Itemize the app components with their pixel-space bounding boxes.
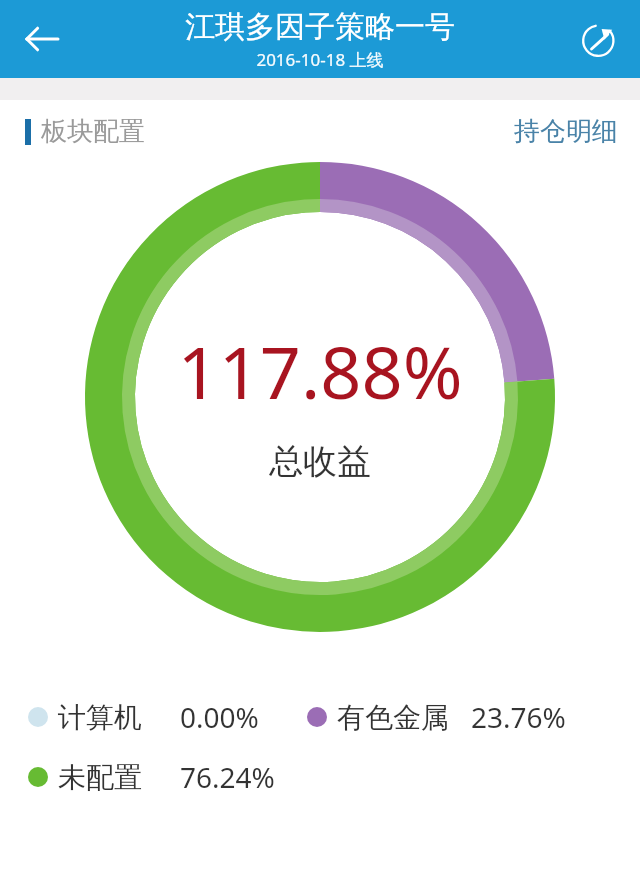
staticText: 未配置	[58, 760, 142, 795]
staticText: 总收益	[269, 440, 371, 483]
staticText: 江琪多因子策略一号	[185, 8, 455, 46]
staticText: 计算机	[58, 700, 142, 735]
button[interactable]: 未配置	[28, 758, 275, 796]
staticText: 2016-10-18 上线	[256, 48, 384, 71]
staticText: 23.76%	[471, 698, 566, 736]
button[interactable]: Share	[572, 11, 628, 67]
button[interactable]: 计算机	[28, 698, 259, 736]
staticText: 板块配置	[41, 115, 145, 148]
staticText: 有色金属	[337, 700, 449, 735]
staticText: 0.00%	[180, 698, 259, 736]
staticText: 持仓明细	[514, 115, 618, 148]
staticText: 76.24%	[180, 758, 275, 796]
button[interactable]: Back	[14, 11, 70, 67]
button[interactable]: 有色金属	[307, 698, 566, 736]
button[interactable]: 持仓明细	[514, 115, 618, 148]
staticText: 117.88%	[177, 322, 463, 420]
button[interactable]: 板块配置	[25, 115, 145, 148]
